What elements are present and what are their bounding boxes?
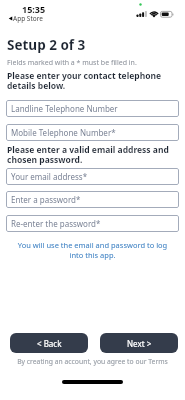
staticText: Re-enter the password*: [11, 218, 101, 229]
button[interactable]: < Back: [10, 333, 88, 353]
staticText: Please enter your contact telephone deta…: [7, 70, 162, 91]
button[interactable]: Next >: [100, 333, 178, 353]
staticText: 15:35: [22, 3, 46, 15]
staticText: You will use the email and password to l…: [0, 240, 185, 260]
staticText: < Back: [37, 338, 62, 349]
staticText: Fields marked with a * must be filled in…: [7, 58, 137, 68]
staticText: Mobile Telephone Number*: [11, 127, 116, 138]
staticText: App Store: [13, 14, 43, 23]
staticText: Enter a password*: [11, 194, 81, 205]
button[interactable]: Re-enter the password*: [6, 215, 179, 232]
button[interactable]: By creating an account, you agree to our…: [0, 357, 185, 366]
staticText: Your email address*: [11, 171, 88, 182]
staticText: Landline Telephone Number: [11, 103, 118, 114]
button[interactable]: Your email address*: [6, 168, 179, 185]
button[interactable]: Mobile Telephone Number*: [6, 124, 179, 141]
button[interactable]: Landline Telephone Number: [6, 100, 179, 117]
button[interactable]: Enter a password*: [6, 191, 179, 208]
staticText: Next >: [127, 338, 152, 349]
staticText: Please enter a valid email address and c…: [7, 144, 169, 165]
staticText: Setup 2 of 3: [7, 36, 86, 54]
button[interactable]: App Store: [8, 14, 43, 23]
